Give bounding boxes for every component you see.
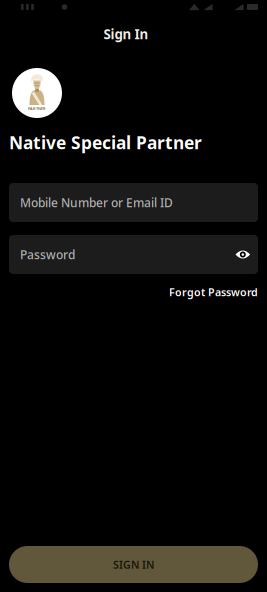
button[interactable]: Password xyxy=(9,235,228,274)
staticText: Password xyxy=(20,246,75,262)
button[interactable]: Sign In xyxy=(103,25,148,43)
button[interactable]: Mobile Number or Email ID xyxy=(9,183,258,222)
staticText: PARTNER xyxy=(28,106,46,111)
button[interactable]: SIGN IN xyxy=(9,546,258,583)
staticText: Native Special Partner xyxy=(9,131,202,154)
staticText: SIGN IN xyxy=(113,557,154,572)
button[interactable]: Show password xyxy=(228,241,257,268)
staticText: Forgot Password xyxy=(169,285,258,299)
staticText: Mobile Number or Email ID xyxy=(20,194,173,210)
staticText: Sign In xyxy=(103,25,148,43)
button[interactable]: Forgot Password xyxy=(169,285,258,299)
